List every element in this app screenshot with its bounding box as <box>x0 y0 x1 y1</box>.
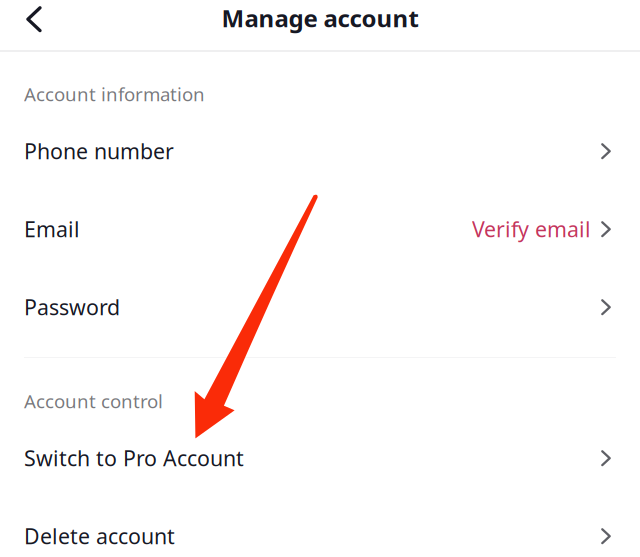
button[interactable]: Password <box>0 268 640 346</box>
staticText: Verify email <box>472 215 591 243</box>
staticText: Delete account <box>24 522 175 550</box>
button[interactable]: Back <box>0 3 58 47</box>
staticText: Account control <box>24 389 163 413</box>
staticText: Account information <box>24 82 205 106</box>
button[interactable]: Switch to Pro Account <box>0 419 640 497</box>
staticText: Password <box>24 293 120 321</box>
button[interactable]: Delete account <box>0 497 640 557</box>
staticText: Email <box>24 215 80 243</box>
staticText: Phone number <box>24 137 174 165</box>
staticText: Switch to Pro Account <box>24 444 244 472</box>
button[interactable]: Phone number <box>0 112 640 190</box>
button[interactable]: Email <box>0 190 640 268</box>
staticText: Manage account <box>221 2 418 34</box>
